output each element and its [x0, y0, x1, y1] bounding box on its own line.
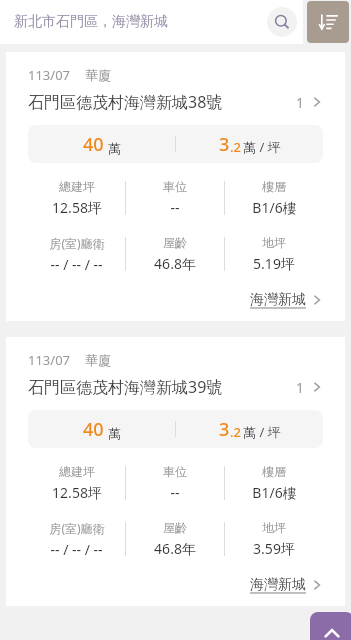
- staticText: 40: [83, 417, 104, 442]
- staticText: .2: [230, 423, 241, 441]
- staticText: 華廈: [85, 67, 111, 83]
- staticText: 3: [219, 132, 230, 157]
- staticText: .2: [230, 138, 241, 156]
- staticText: 房(室)廳衛: [49, 520, 105, 536]
- staticText: 113/07: [28, 66, 71, 84]
- staticText: -- / -- / --: [50, 540, 103, 559]
- staticText: 3: [219, 417, 230, 442]
- staticText: 新北市石門區，海灣新城: [14, 13, 267, 31]
- staticText: 3.59坪: [253, 539, 295, 558]
- staticText: 12.58坪: [52, 198, 102, 217]
- staticText: -- / -- / --: [50, 255, 103, 274]
- staticText: 海灣新城: [250, 576, 306, 594]
- staticText: 樓層: [262, 179, 286, 194]
- staticText: B1/6樓: [252, 198, 297, 217]
- staticText: 地坪: [262, 235, 286, 250]
- staticText: B1/6樓: [252, 483, 297, 502]
- staticText: 海灣新城: [250, 291, 306, 309]
- staticText: 萬 / 坪: [243, 138, 281, 156]
- staticText: --: [170, 198, 180, 217]
- staticText: 113/07: [28, 351, 71, 369]
- button[interactable]: 海灣新城: [250, 289, 323, 311]
- staticText: 總建坪: [59, 464, 95, 479]
- staticText: 石門區德茂村海灣新城39號: [28, 376, 296, 398]
- button[interactable]: 113/07: [6, 337, 345, 606]
- staticText: 車位: [163, 464, 187, 479]
- button[interactable]: Sort: [307, 1, 349, 43]
- staticText: 總建坪: [59, 179, 95, 194]
- staticText: 地坪: [262, 520, 286, 535]
- staticText: 萬: [108, 140, 121, 156]
- staticText: 12.58坪: [52, 483, 102, 502]
- button[interactable]: 113/07: [6, 52, 345, 321]
- staticText: 樓層: [262, 464, 286, 479]
- staticText: 46.8年: [154, 539, 196, 558]
- button[interactable]: 新北市石門區，海灣新城: [0, 0, 303, 44]
- staticText: 萬: [108, 425, 121, 441]
- staticText: 房(室)廳衛: [49, 235, 105, 251]
- staticText: 石門區德茂村海灣新城38號: [28, 91, 296, 113]
- button[interactable]: Scroll to top: [310, 612, 351, 640]
- staticText: 1: [296, 378, 305, 397]
- button[interactable]: 海灣新城: [250, 574, 323, 596]
- staticText: 5.19坪: [253, 254, 295, 273]
- staticText: --: [170, 483, 180, 502]
- button[interactable]: Search: [267, 7, 297, 37]
- staticText: 46.8年: [154, 254, 196, 273]
- staticText: 萬 / 坪: [243, 423, 281, 441]
- staticText: 屋齡: [163, 520, 187, 535]
- staticText: 屋齡: [163, 235, 187, 250]
- staticText: 華廈: [85, 352, 111, 368]
- staticText: 40: [83, 132, 104, 157]
- staticText: 1: [296, 93, 305, 112]
- staticText: 車位: [163, 179, 187, 194]
